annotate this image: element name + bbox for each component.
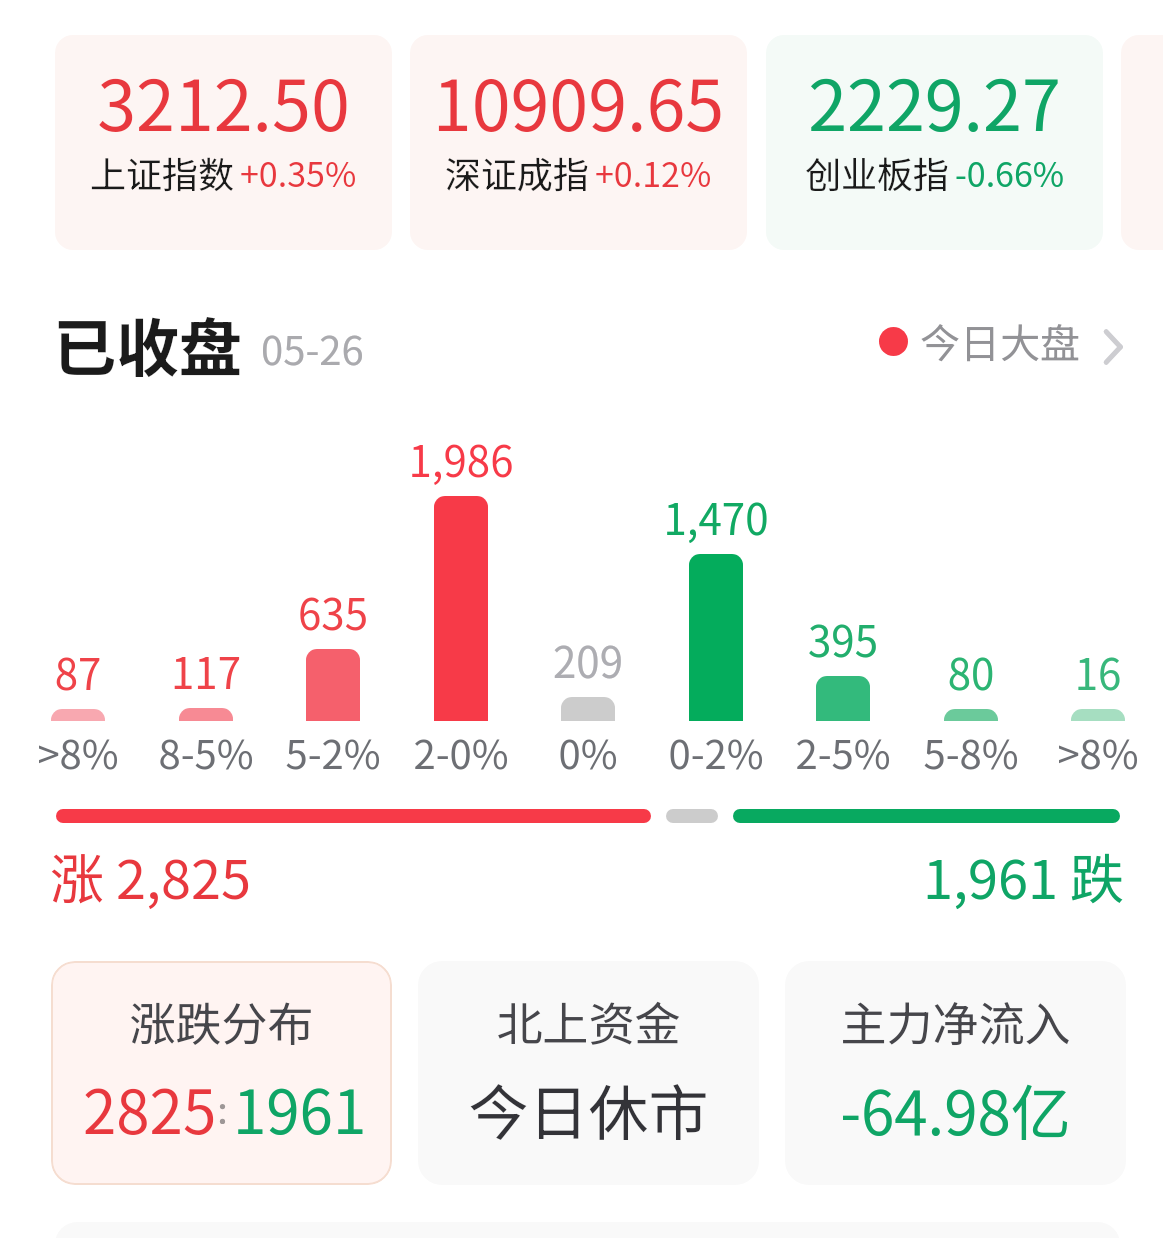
staticText: 创业板指 — [805, 146, 950, 198]
staticText: 1,961 跌 — [700, 836, 1124, 914]
staticText: 上证指数 — [90, 146, 235, 198]
button[interactable]: 3212.50 — [55, 35, 392, 250]
button[interactable]: 已收盘 — [42, 296, 392, 386]
staticText: 北上资金 — [418, 988, 759, 1055]
staticText: 已收盘 — [53, 298, 242, 388]
staticText: 2825 — [83, 1064, 217, 1151]
staticText: 5-2% — [253, 723, 413, 781]
staticText: >8% — [1018, 723, 1163, 781]
staticText: 1,470 — [636, 486, 796, 547]
staticText: 10909.65 — [410, 50, 747, 151]
staticText: 87 — [0, 641, 158, 702]
staticText: 0% — [508, 723, 668, 781]
staticText: 80 — [891, 641, 1051, 702]
button[interactable]: 北上资金 — [418, 961, 759, 1185]
staticText: 2-0% — [381, 723, 541, 781]
staticText: 今日大盘 — [920, 312, 1080, 370]
staticText: 8-5% — [126, 723, 286, 781]
staticText: +0.12% — [595, 148, 712, 197]
staticText: 主力净流入 — [785, 988, 1126, 1055]
staticText: 涨跌分布 — [51, 988, 392, 1055]
staticText: 117 — [126, 640, 286, 701]
staticText: 2229.27 — [766, 50, 1103, 151]
staticText: 深证成指 — [445, 146, 590, 198]
staticText: 635 — [253, 581, 413, 642]
staticText: 3212.50 — [55, 50, 392, 151]
staticText: 1961 — [233, 1064, 367, 1151]
staticText: >8% — [0, 723, 158, 781]
staticText: 395 — [763, 608, 923, 669]
other: 查看今日大盘 — [1096, 330, 1130, 364]
staticText: 0-2% — [636, 723, 796, 781]
button[interactable]: 2229.27 — [766, 35, 1103, 250]
staticText: -64.98亿 — [785, 1065, 1126, 1152]
staticText: 209 — [508, 629, 668, 690]
staticText: 05-26 — [261, 319, 364, 377]
staticText: 涨 2,825 — [50, 836, 251, 914]
staticText: +0.35% — [240, 148, 357, 197]
staticText: -0.66% — [955, 148, 1065, 197]
staticText: 16 — [1018, 641, 1163, 702]
button[interactable]: 今日大盘 — [879, 305, 1130, 377]
button[interactable]: 涨跌分布 — [51, 961, 392, 1185]
staticText: 5-8% — [891, 723, 1051, 781]
button[interactable]: 主力净流入 — [785, 961, 1126, 1185]
staticText: 2-5% — [763, 723, 923, 781]
button[interactable]: 10909.65 — [410, 35, 747, 250]
staticText: 今日休市 — [418, 1065, 759, 1152]
staticText: 1,986 — [381, 428, 541, 489]
